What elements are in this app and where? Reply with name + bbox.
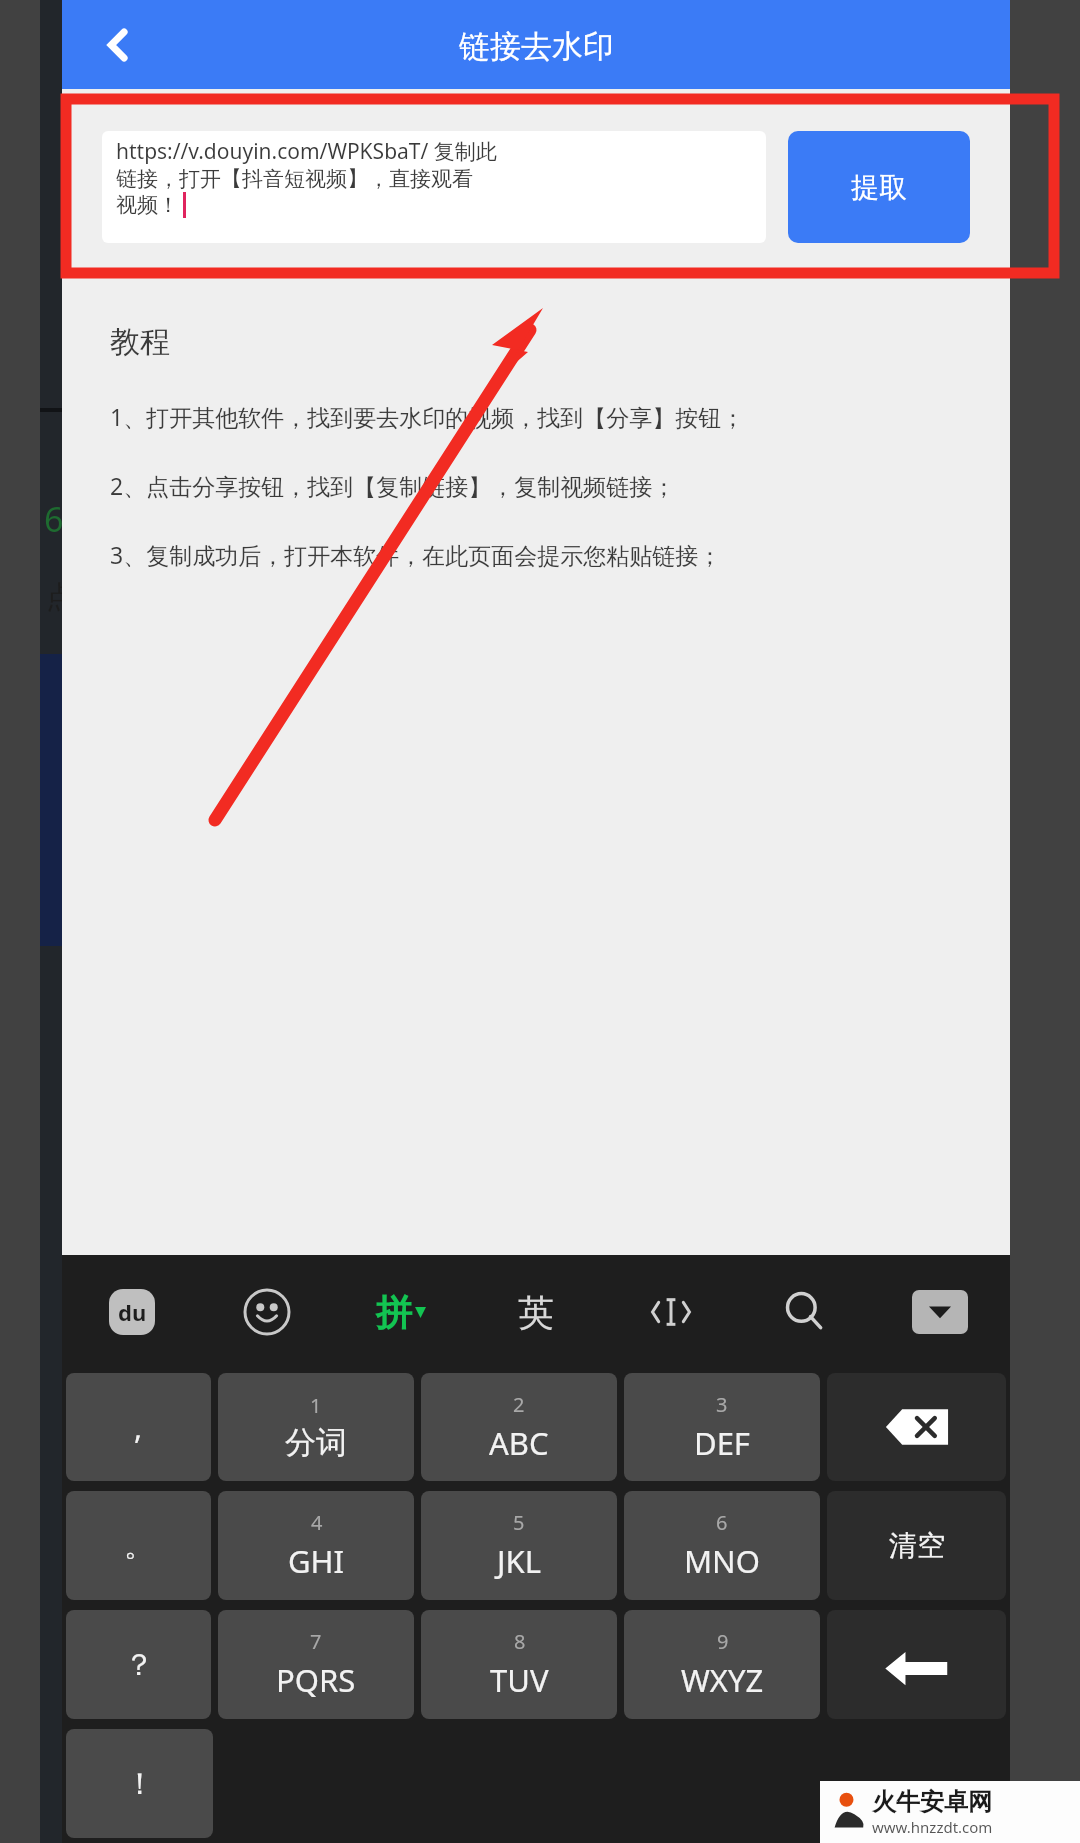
button[interactable]: 8 — [421, 1610, 617, 1719]
staticText: 3 — [716, 1391, 728, 1418]
staticText: 点 — [46, 578, 76, 616]
button[interactable]: 提取 — [788, 131, 970, 243]
staticText: GHI — [288, 1540, 345, 1582]
staticText: 5 — [513, 1509, 525, 1536]
staticText: 英 — [518, 1290, 554, 1335]
staticText: MNO — [684, 1540, 760, 1582]
button[interactable]: 清空 — [827, 1491, 1006, 1600]
button[interactable]: Back — [86, 13, 150, 77]
staticText: 8 — [514, 1628, 526, 1655]
staticText: DEF — [694, 1422, 750, 1464]
staticText: 9 — [717, 1628, 729, 1655]
staticText: du — [118, 1297, 147, 1327]
button[interactable]: 6 — [624, 1491, 820, 1600]
staticText: 视频！ — [116, 192, 179, 218]
staticText: 1、打开其他软件，找到要去水印的视频，找到【分享】按钮； — [110, 401, 745, 432]
button[interactable]: ？ — [66, 1610, 211, 1719]
staticText: JKL — [497, 1540, 541, 1582]
button[interactable]: Search — [769, 1276, 841, 1348]
staticText: 2、点击分享按钮，找到【复制链接】，复制视频链接； — [110, 470, 676, 501]
staticText: PQRS — [276, 1659, 356, 1701]
button[interactable]: Enter — [827, 1610, 1006, 1719]
staticText: 4 — [311, 1509, 323, 1536]
staticText: 3、复制成功后，打开本软件，在此页面会提示您粘贴链接； — [110, 539, 722, 570]
staticText: 拼 — [376, 1290, 412, 1335]
staticText: 6 — [716, 1509, 728, 1536]
staticText: 教程 — [110, 323, 170, 361]
staticText: www.hnzzdt.com — [872, 1817, 993, 1837]
button[interactable]: 。 — [66, 1491, 211, 1600]
staticText: https://v.douyin.com/WPKSbaT/ 复制此 — [116, 137, 497, 166]
button[interactable]: Move cursor — [635, 1276, 707, 1348]
staticText: 链接去水印 — [459, 27, 614, 66]
button[interactable]: https://v.douyin.com/WPKSbaT/ 复制此 — [102, 131, 766, 243]
staticText: 2 — [513, 1391, 525, 1418]
staticText: WXYZ — [681, 1659, 764, 1701]
staticText: 链接，打开【抖音短视频】，直接观看 — [116, 166, 473, 192]
staticText: 。 — [124, 1527, 154, 1565]
button[interactable]: ！ — [66, 1729, 213, 1838]
button[interactable]: 4 — [218, 1491, 414, 1600]
staticText: ABC — [489, 1422, 549, 1464]
staticText: 7 — [310, 1628, 322, 1655]
button[interactable]: Emoji — [231, 1276, 303, 1348]
staticText: 6 — [44, 496, 64, 542]
button[interactable]: Hide keyboard — [904, 1276, 976, 1348]
staticText: 1 — [310, 1392, 322, 1419]
button[interactable]: 9 — [624, 1610, 820, 1719]
staticText: ！ — [125, 1765, 155, 1803]
button[interactable]: , — [66, 1373, 211, 1481]
staticText: 提取 — [851, 170, 907, 205]
button[interactable]: 5 — [421, 1491, 617, 1600]
button[interactable]: Baidu input — [96, 1276, 168, 1348]
button[interactable]: 3 — [624, 1373, 820, 1481]
button[interactable]: 2 — [421, 1373, 617, 1481]
staticText: TUV — [490, 1659, 549, 1701]
button[interactable]: English — [500, 1276, 572, 1348]
staticText: 分词 — [285, 1423, 347, 1462]
button[interactable]: Pinyin — [365, 1276, 437, 1348]
staticText: 清空 — [889, 1528, 945, 1563]
button[interactable]: 1 — [218, 1373, 414, 1481]
button[interactable]: 7 — [218, 1610, 414, 1719]
staticText: 火牛安卓网 — [872, 1787, 992, 1817]
button[interactable]: Backspace — [827, 1373, 1006, 1481]
staticText: , — [134, 1407, 143, 1448]
staticText: ？ — [124, 1646, 154, 1684]
